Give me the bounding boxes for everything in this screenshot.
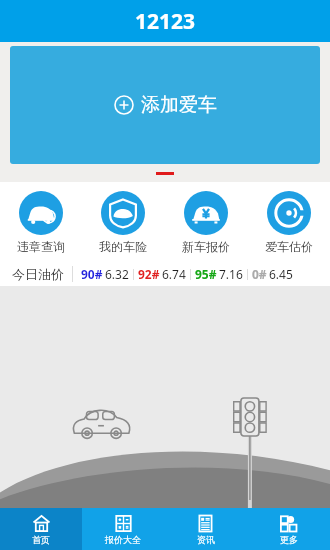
staticText: 6.32	[105, 266, 129, 282]
button[interactable]: 爱车估价	[247, 182, 330, 262]
staticText: 90#	[81, 266, 103, 282]
staticText: 我的车险	[99, 239, 147, 254]
staticText: 12123	[135, 7, 196, 36]
staticText: 6.45	[269, 266, 293, 282]
staticText: 爱车估价	[265, 239, 313, 254]
button[interactable]: 今日油价	[0, 262, 330, 286]
staticText: 添加爱车	[141, 93, 217, 117]
button[interactable]: 添加爱车	[10, 46, 320, 164]
staticText: 今日油价	[12, 266, 64, 282]
staticText: 新车报价	[182, 239, 230, 254]
staticText: 92#	[138, 266, 160, 282]
button[interactable]: 更多	[247, 508, 330, 550]
staticText: 0#	[252, 266, 267, 282]
button[interactable]: 新车报价	[164, 182, 247, 262]
button[interactable]: 违章查询	[0, 182, 82, 262]
staticText: 资讯	[197, 534, 215, 545]
staticText: 95#	[195, 266, 217, 282]
staticText: 报价大全	[105, 534, 141, 545]
staticText: 更多	[280, 534, 298, 545]
button[interactable]: 报价大全	[82, 508, 164, 550]
staticText: 7.16	[219, 266, 243, 282]
staticText: 违章查询	[17, 239, 65, 254]
staticText: 首页	[32, 534, 50, 545]
button[interactable]: 资讯	[164, 508, 247, 550]
button[interactable]: 首页	[0, 508, 82, 550]
staticText: 6.74	[162, 266, 186, 282]
button[interactable]: 我的车险	[82, 182, 164, 262]
